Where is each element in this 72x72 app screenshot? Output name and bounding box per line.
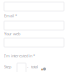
staticText: Email * [4, 13, 17, 18]
button[interactable]: Open [40, 67, 45, 71]
staticText: total [31, 64, 38, 69]
staticText: Step [4, 64, 11, 69]
staticText: Your web [4, 31, 20, 36]
staticText: - [27, 64, 28, 69]
staticText: I'm interested in * [4, 53, 35, 58]
